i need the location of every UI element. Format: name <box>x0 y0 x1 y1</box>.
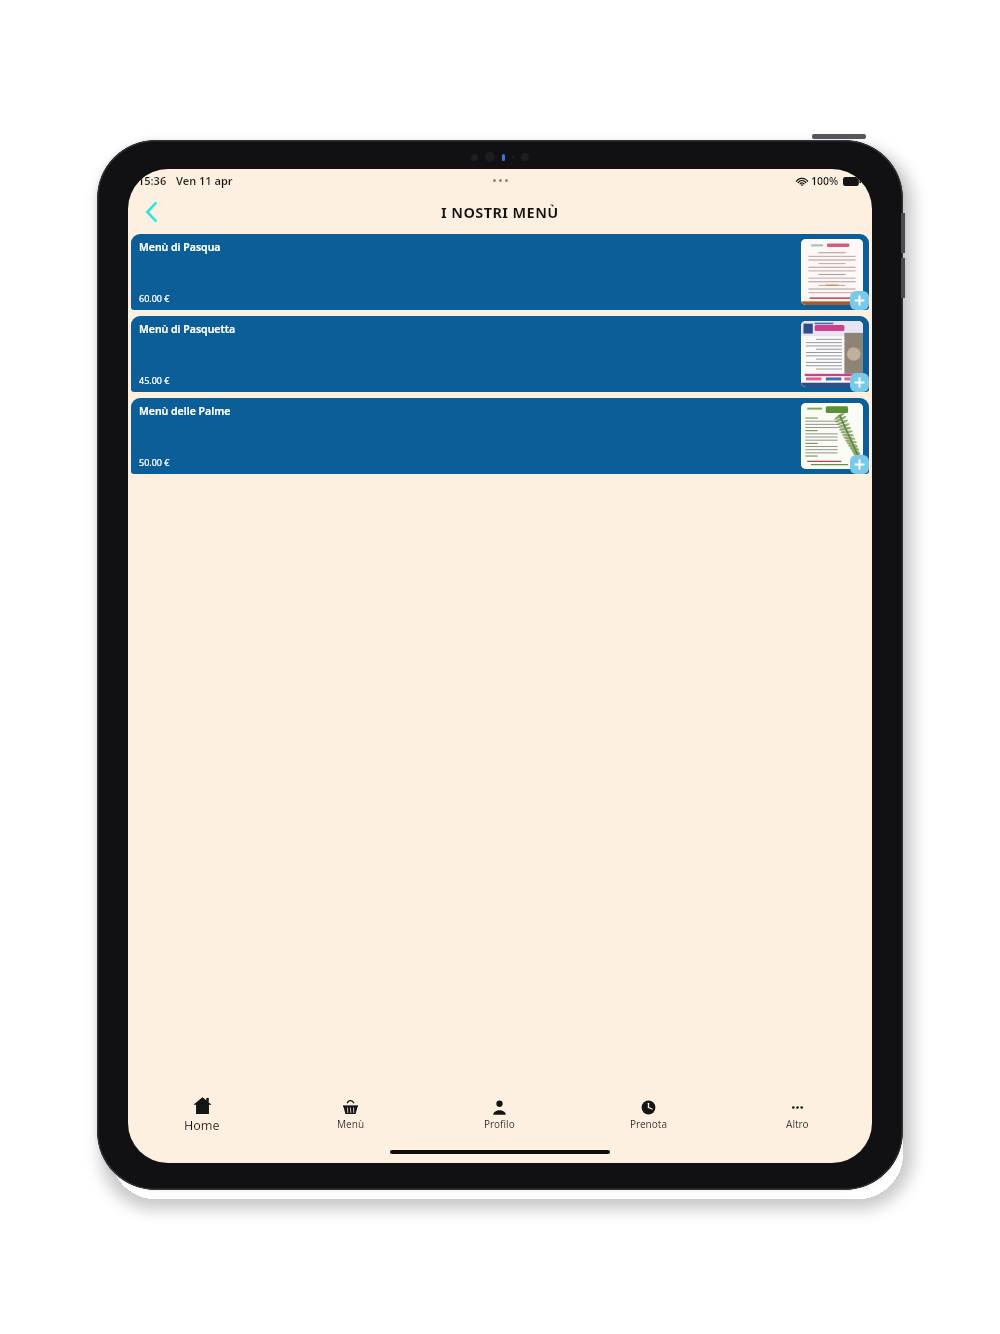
staticText: Menù di Pasqua <box>139 240 221 254</box>
button[interactable]: Altro <box>723 1089 872 1141</box>
staticText: 60.00 € <box>139 292 170 304</box>
staticText: 100% <box>811 174 839 188</box>
button[interactable]: Prenota <box>574 1089 723 1141</box>
button[interactable]: Aggiungi Menù delle Palme <box>850 455 869 474</box>
staticText: Menù <box>337 1117 365 1131</box>
button[interactable]: Indietro <box>134 195 168 229</box>
staticText: 15:36 <box>138 173 167 188</box>
button[interactable]: Menù di Pasqua <box>131 234 869 310</box>
staticText: Altro <box>786 1117 809 1131</box>
button[interactable]: Menù di Pasquetta <box>131 316 869 392</box>
staticText: Menù di Pasquetta <box>139 322 236 336</box>
staticText: 50.00 € <box>139 456 170 468</box>
button[interactable]: Aggiungi Menù di Pasquetta <box>850 373 869 392</box>
staticText: Menù delle Palme <box>139 404 231 418</box>
button[interactable]: Home <box>128 1089 276 1141</box>
staticText: I NOSTRI MENÙ <box>441 202 559 222</box>
button[interactable]: Aggiungi Menù di Pasqua <box>850 291 869 310</box>
staticText: 45.00 € <box>139 374 170 386</box>
staticText: Home <box>184 1117 220 1134</box>
button[interactable]: Menù delle Palme <box>131 398 869 474</box>
button[interactable]: Profilo <box>425 1089 574 1141</box>
staticText: Profilo <box>484 1117 515 1131</box>
staticText: Prenota <box>630 1117 668 1131</box>
staticText: Ven 11 apr <box>176 173 233 188</box>
button[interactable]: Menù <box>276 1089 425 1141</box>
